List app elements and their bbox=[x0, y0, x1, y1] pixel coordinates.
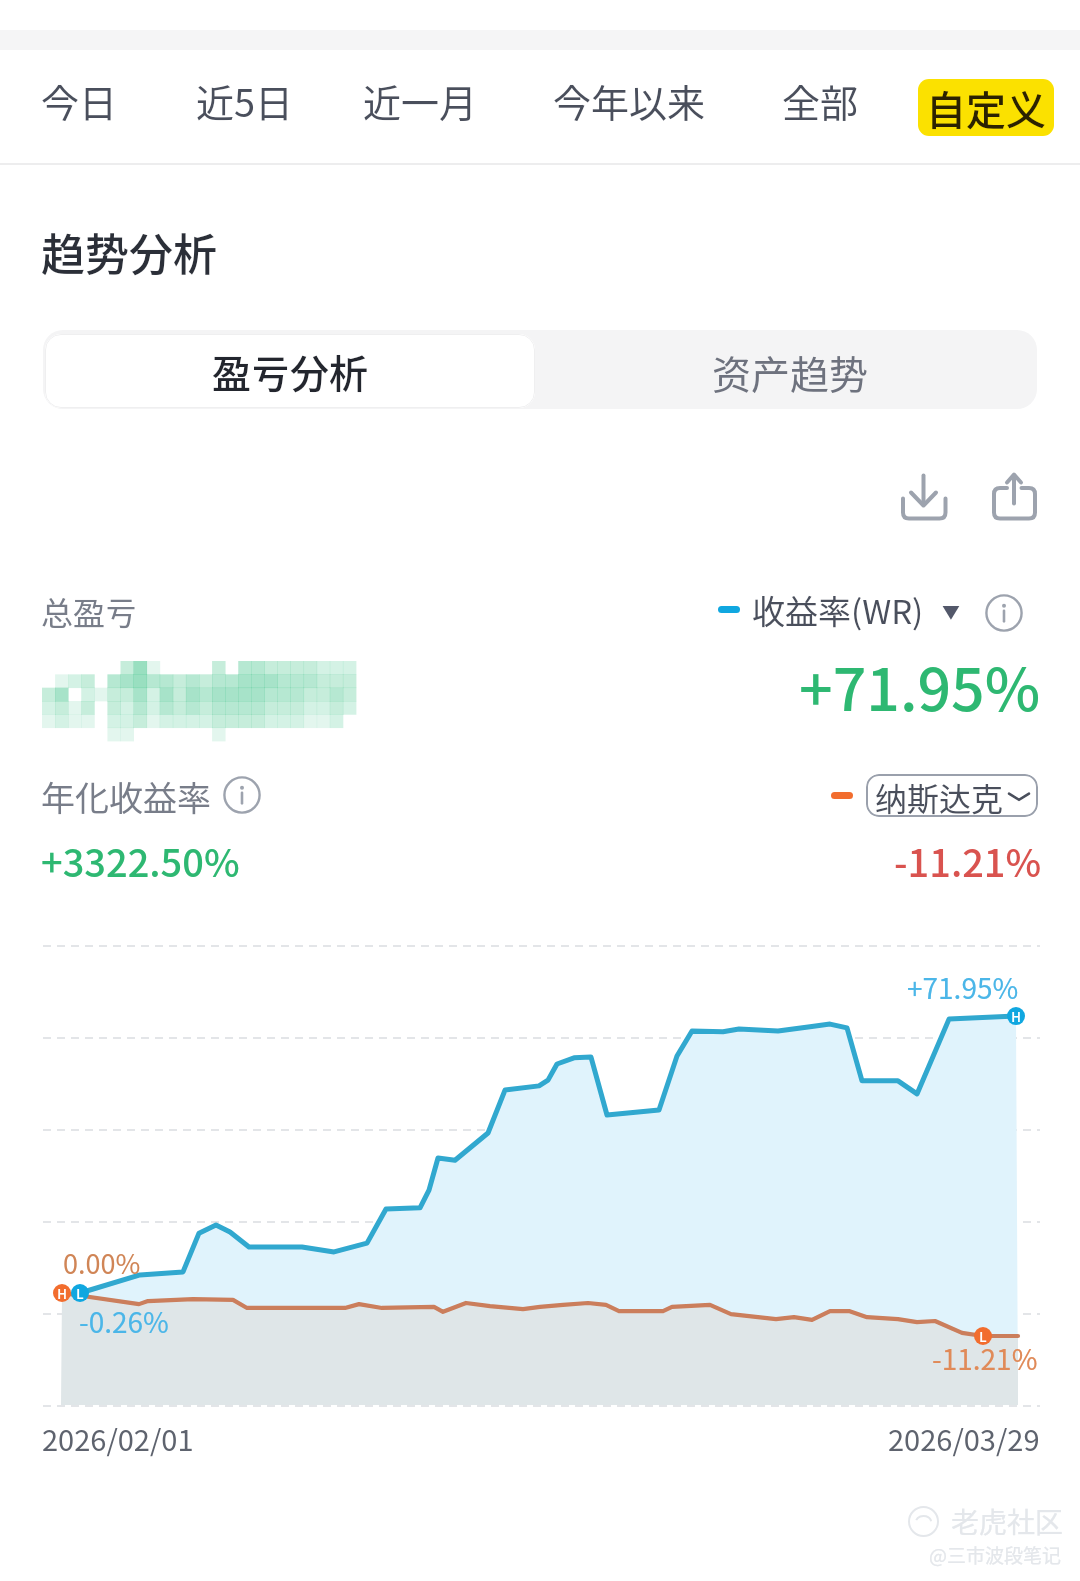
staticText: H bbox=[1011, 1007, 1021, 1026]
staticText: 老虎社区 bbox=[951, 1501, 1064, 1542]
staticText: L bbox=[76, 1284, 84, 1303]
button[interactable]: 近一月 bbox=[363, 67, 478, 133]
staticText: 全部 bbox=[782, 73, 859, 128]
staticText: 趋势分析 bbox=[41, 220, 217, 284]
staticText: 纳斯达克 bbox=[875, 774, 1004, 817]
staticText: 资产趋势 bbox=[712, 344, 869, 400]
staticText: 近一月 bbox=[363, 73, 478, 128]
staticText: 收益率(WR) bbox=[752, 586, 924, 634]
staticText: @三市波段笔记 bbox=[929, 1541, 1061, 1569]
staticText: 2026/02/01 bbox=[42, 1417, 194, 1459]
staticText: -11.21% bbox=[894, 833, 1042, 888]
staticText: +3322.50% bbox=[41, 833, 240, 888]
staticText: 年化收益率 bbox=[41, 772, 211, 821]
button[interactable]: 今年以来 bbox=[553, 67, 706, 133]
button[interactable]: Share bbox=[983, 464, 1047, 528]
button[interactable]: 资产趋势 bbox=[545, 334, 1036, 409]
button[interactable]: 纳斯达克 bbox=[866, 774, 1038, 817]
button[interactable]: 全部 bbox=[782, 67, 859, 133]
button[interactable]: Change metric bbox=[934, 596, 968, 626]
button[interactable]: Download bbox=[892, 464, 956, 528]
staticText: H bbox=[57, 1284, 67, 1303]
staticText: -11.21% bbox=[932, 1338, 1038, 1379]
staticText: +71.95% bbox=[907, 967, 1019, 1008]
button[interactable]: Info bbox=[223, 776, 261, 814]
button[interactable]: 自定义 bbox=[918, 79, 1054, 136]
button[interactable]: 今日 bbox=[41, 67, 118, 133]
staticText: L bbox=[979, 1327, 987, 1346]
staticText: +71.95% bbox=[799, 643, 1041, 728]
staticText: 0.00% bbox=[63, 1243, 141, 1282]
staticText: 近5日 bbox=[196, 73, 294, 128]
button[interactable]: 盈亏分析 bbox=[45, 334, 535, 408]
staticText: -0.26% bbox=[79, 1301, 169, 1342]
staticText: 今日 bbox=[41, 73, 118, 128]
staticText: 今年以来 bbox=[553, 73, 706, 128]
button[interactable]: 近5日 bbox=[196, 67, 294, 133]
staticText: 总盈亏 bbox=[41, 588, 138, 634]
staticText: 盈亏分析 bbox=[212, 343, 369, 399]
button[interactable]: 收益率(WR) bbox=[752, 586, 924, 634]
staticText: 自定义 bbox=[926, 79, 1046, 136]
staticText: 2026/03/29 bbox=[888, 1417, 1040, 1459]
button[interactable]: Info bbox=[985, 594, 1023, 632]
